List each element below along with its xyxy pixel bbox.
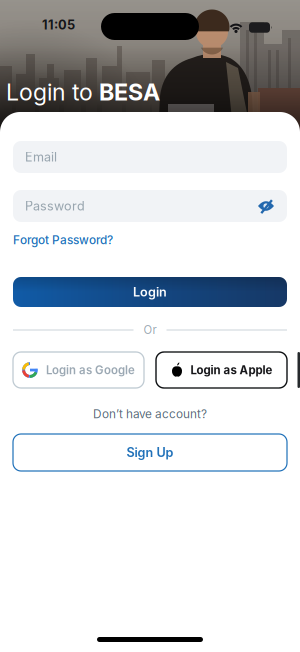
button[interactable]: Sign Up bbox=[13, 434, 287, 471]
staticText: Login to bbox=[6, 78, 99, 106]
staticText: Password bbox=[25, 198, 85, 214]
staticText: Email bbox=[25, 149, 57, 165]
staticText: BESA bbox=[99, 78, 160, 106]
button[interactable]: Email bbox=[13, 141, 287, 173]
staticText: Login as Google bbox=[46, 363, 135, 377]
button[interactable]: Password bbox=[13, 190, 287, 222]
button[interactable]: Login bbox=[13, 277, 287, 307]
button[interactable]: Forgot Password? bbox=[13, 233, 113, 247]
staticText: 11:05 bbox=[42, 17, 75, 32]
button[interactable]: Login as Google bbox=[13, 352, 144, 388]
staticText: Sign Up bbox=[126, 445, 173, 460]
staticText: Login bbox=[133, 284, 167, 300]
staticText: Login as Apple bbox=[190, 363, 272, 377]
staticText: Or bbox=[143, 323, 156, 337]
button[interactable]: Login as Apple bbox=[156, 352, 287, 388]
staticText: Forgot Password? bbox=[13, 233, 113, 247]
staticText: Don’t have account? bbox=[93, 407, 207, 421]
